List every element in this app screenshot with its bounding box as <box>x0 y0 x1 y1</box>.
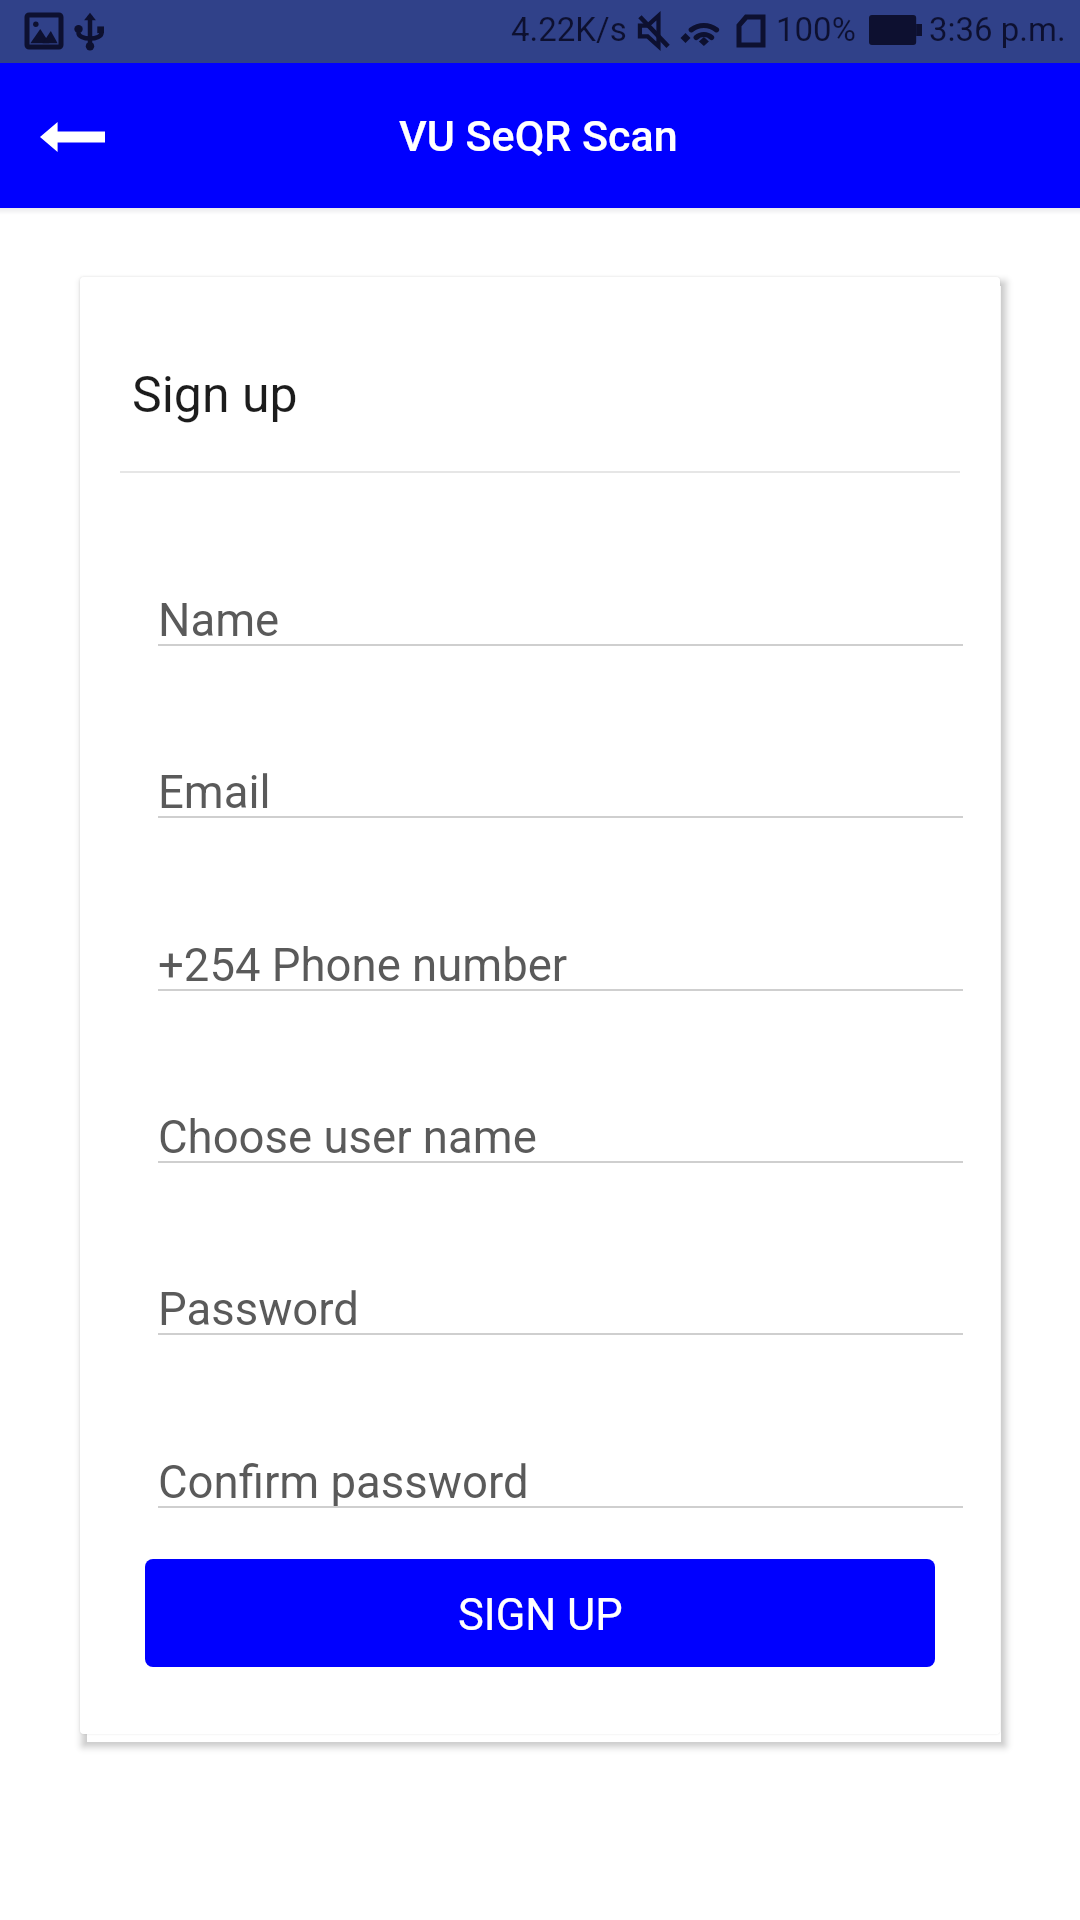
staticText: 4.22K/s <box>511 10 627 49</box>
staticText: SIGN UP <box>458 1590 623 1641</box>
staticText: +254 Phone number <box>158 939 568 992</box>
button[interactable]: +254 Phone number <box>158 889 963 991</box>
staticText: 3:36 p.m. <box>929 10 1066 49</box>
staticText: Sign up <box>132 366 298 425</box>
button[interactable]: Name <box>158 544 963 646</box>
staticText: Password <box>158 1283 359 1336</box>
button[interactable]: Choose user name <box>158 1061 963 1163</box>
button[interactable]: Email <box>158 716 963 818</box>
button[interactable]: Password <box>158 1233 963 1335</box>
button[interactable]: SIGN UP <box>145 1559 935 1667</box>
staticText: Name <box>158 594 280 647</box>
button[interactable]: Back <box>22 86 122 186</box>
staticText: 100% <box>776 10 856 49</box>
staticText: Email <box>158 766 271 819</box>
staticText: Choose user name <box>158 1111 537 1164</box>
staticText: VU SeQR Scan <box>399 111 678 161</box>
staticText: Confirm password <box>158 1456 529 1509</box>
button[interactable]: Confirm password <box>158 1406 963 1508</box>
